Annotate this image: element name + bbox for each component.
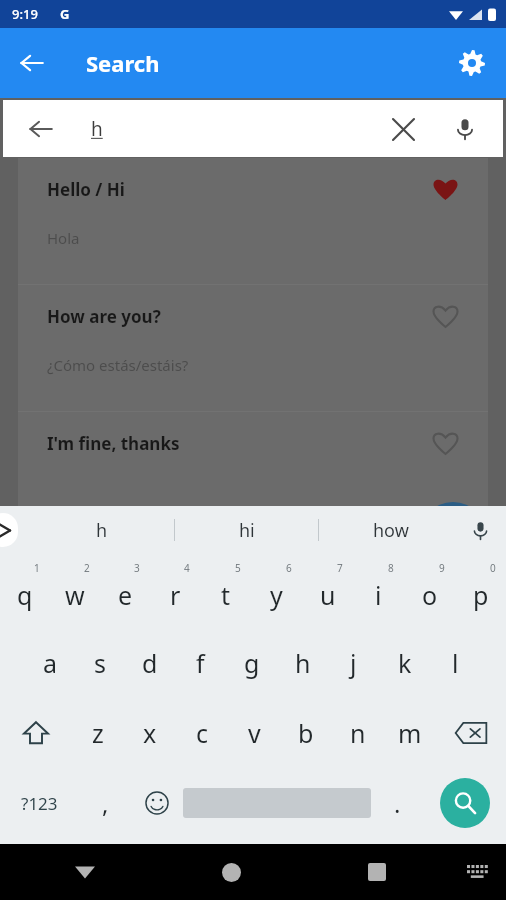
button[interactable]: I'm fine, thanks [18,412,488,522]
staticText: 6 [286,561,292,575]
button[interactable]: 6 [251,554,302,628]
staticText: Hola [47,228,80,248]
staticText: 9 [439,561,445,575]
button[interactable]: h [30,506,174,554]
button[interactable]: 8 [353,554,404,628]
button[interactable]: Favorite [422,293,468,339]
button[interactable]: Backspace [436,698,506,768]
button[interactable]: x [124,698,176,768]
button[interactable]: Favorite [422,420,468,466]
button[interactable]: l [430,628,481,698]
button[interactable]: how [319,506,462,554]
staticText: 4 [184,561,190,575]
button[interactable]: hi [175,506,318,554]
staticText: ¿Cómo estás/estáis? [47,355,189,375]
button[interactable]: Clear [383,109,423,149]
staticText: p [473,578,489,612]
button[interactable]: n [332,698,384,768]
button[interactable]: g [226,628,277,698]
staticText: 5 [235,561,241,575]
staticText: f [196,646,205,680]
staticText: h [96,518,108,543]
staticText: a [43,646,58,680]
button[interactable]: Shift [0,698,71,768]
staticText: how [373,518,409,543]
staticText: o [422,578,438,612]
button[interactable]: How are you? [18,285,488,412]
staticText: i [375,578,382,612]
staticText: j [350,646,357,680]
staticText: c [196,716,209,750]
staticText: g [244,646,260,680]
staticText: y [270,578,283,612]
button[interactable]: Emoji [131,768,183,838]
button[interactable]: Hello / Hi [18,158,488,285]
button[interactable]: 7 [302,554,353,628]
staticText: w [65,578,85,612]
button[interactable]: 1 [0,554,50,628]
staticText: b [298,716,314,750]
staticText: 2 [84,561,90,575]
staticText: d [142,646,158,680]
button[interactable]: Voice search [445,109,485,149]
button[interactable]: Play [418,502,488,572]
staticText: 9:19 [12,5,38,23]
button[interactable]: 2 [50,554,100,628]
staticText: . [394,787,401,820]
staticText: How are you? [47,305,161,328]
button[interactable]: , [79,768,131,838]
button[interactable]: Switch keyboard [456,850,500,894]
staticText: h [91,116,103,142]
button[interactable]: z [71,698,124,768]
button[interactable]: j [328,628,379,698]
button[interactable]: k [379,628,430,698]
button[interactable]: b [280,698,332,768]
button[interactable]: Space [183,768,371,838]
staticText: 3 [134,561,140,575]
button[interactable]: h [277,628,328,698]
button[interactable]: Favorite [422,166,468,212]
button[interactable]: Recents [353,848,401,896]
staticText: x [143,716,157,750]
button[interactable]: . [371,768,423,838]
button[interactable]: s [75,628,125,698]
staticText: e [118,578,133,612]
button[interactable]: Voice input [462,512,498,548]
staticText: u [320,578,336,612]
button[interactable]: Hide keyboard [61,848,109,896]
button[interactable]: Expand suggestions [0,513,18,547]
button[interactable]: Home [207,848,255,896]
button[interactable]: Search [440,778,490,828]
button[interactable]: 4 [150,554,200,628]
staticText: z [92,716,104,750]
button[interactable]: 3 [100,554,150,628]
button[interactable]: c [176,698,228,768]
button[interactable]: f [175,628,226,698]
button[interactable]: d [125,628,175,698]
button[interactable]: m [384,698,436,768]
staticText: n [350,716,366,750]
staticText: 0 [490,561,496,575]
button[interactable]: Settings [448,39,496,87]
staticText: ?123 [21,792,58,815]
button[interactable]: Back [8,39,56,87]
staticText: Search [86,48,160,78]
button[interactable]: Back [3,100,503,157]
button[interactable]: Back [19,107,63,151]
button[interactable]: v [228,698,280,768]
staticText: v [248,716,261,750]
staticText: m [398,716,422,750]
button[interactable]: 9 [404,554,455,628]
staticText: r [170,578,181,612]
button[interactable]: ?123 [0,768,79,838]
staticText: k [398,646,412,680]
button[interactable]: a [25,628,75,698]
staticText: I'm fine, thanks [47,432,180,455]
staticText: 1 [34,561,40,575]
staticText: hi [239,518,255,543]
button[interactable]: 0 [455,554,506,628]
button[interactable]: 5 [200,554,251,628]
staticText: h [295,646,311,680]
staticText: 8 [388,561,394,575]
staticText: s [94,646,106,680]
